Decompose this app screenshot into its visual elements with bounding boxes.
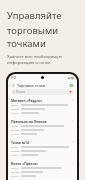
staticText: Телефон	[11, 149, 21, 152]
button[interactable]: Павильон на Ленина	[8, 117, 77, 138]
staticText: Торговые точки	[17, 83, 46, 88]
staticText: информацию о точке.	[7, 60, 52, 66]
staticText: Храните всю необходимую	[7, 54, 62, 60]
button[interactable]: Поиск	[11, 89, 74, 95]
staticText: 9:41	[11, 76, 17, 80]
button[interactable]: Назад	[11, 83, 16, 88]
staticText: Управляйте	[7, 9, 62, 22]
staticText: Телефон	[11, 170, 21, 173]
staticText: Адрес	[11, 145, 21, 148]
staticText: Точка №14	[11, 140, 72, 144]
staticText: Киоск «Пресса»	[11, 161, 72, 165]
staticText: Адрес	[11, 166, 21, 169]
staticText: Статус	[11, 153, 21, 156]
staticText: Павильон на Ленина	[11, 119, 72, 123]
staticText: Статус	[11, 174, 21, 177]
staticText: Статус	[11, 132, 21, 135]
staticText: Адрес	[11, 124, 21, 127]
button[interactable]: Киоск «Пресса»	[8, 159, 77, 180]
staticText: Магазин «Радуга»	[11, 98, 72, 102]
staticText: Адрес	[11, 103, 21, 106]
button[interactable]: Карта	[69, 83, 74, 88]
staticText: Поиск	[16, 90, 25, 94]
staticText: Телефон	[11, 107, 21, 110]
button[interactable]: Магазин «Радуга»	[8, 96, 77, 117]
staticText: торговыми точками	[7, 24, 81, 50]
staticText: Телефон	[11, 128, 21, 131]
button[interactable]: Точка №14	[8, 138, 77, 159]
staticText: Статус	[11, 111, 21, 114]
